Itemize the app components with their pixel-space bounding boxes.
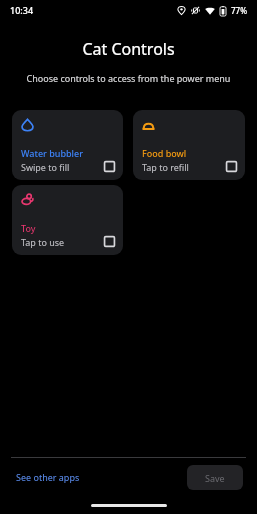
staticText: 10:34 [10,4,34,16]
staticText: Food bowl [142,147,187,159]
button[interactable]: Select Toy [103,235,116,248]
staticText: Water bubbler [21,147,83,159]
button[interactable]: Select Food bowl [225,160,238,173]
button[interactable]: Food bowl [133,110,245,180]
button[interactable]: Water bubbler [12,110,123,180]
staticText: Choose controls to access from the power… [12,72,245,84]
staticText: Tap to refill [142,161,189,173]
button[interactable]: Select Water bubbler [103,160,116,173]
staticText: Cat Controls [0,38,257,60]
staticText: 77% [231,5,247,16]
staticText: See other apps [16,471,80,483]
button[interactable]: Toy [12,185,123,255]
button[interactable]: See other apps [14,467,82,487]
button[interactable]: Save [187,465,243,490]
staticText: Tap to use [21,236,65,248]
staticText: Toy [21,222,36,234]
staticText: Swipe to fill [21,161,70,173]
staticText: Save [205,472,225,484]
